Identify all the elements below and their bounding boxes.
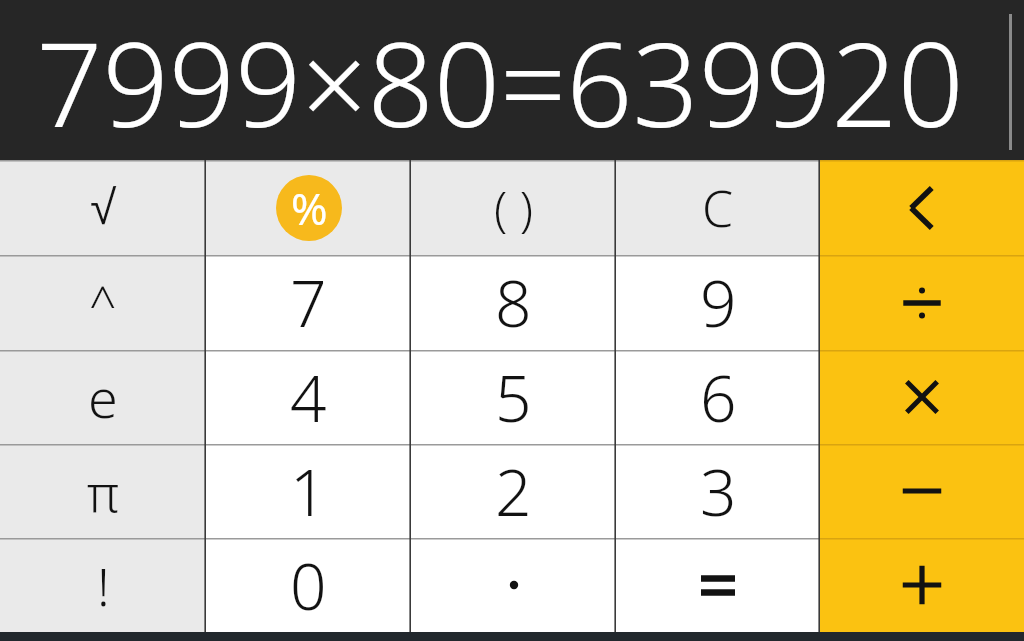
button[interactable]: Divide (820, 255, 1024, 350)
staticText: 1 (290, 448, 327, 535)
button[interactable]: 9 (616, 255, 820, 350)
button[interactable]: 0 (206, 538, 411, 632)
button[interactable]: π (0, 444, 206, 538)
staticText: C (702, 174, 734, 242)
staticText: π (87, 456, 120, 527)
button[interactable]: 8 (411, 255, 616, 350)
staticText: 5 (495, 354, 532, 441)
button[interactable]: ! (0, 538, 206, 632)
button[interactable]: Plus (820, 538, 1024, 632)
staticText: ( ) (494, 175, 534, 240)
staticText: % (291, 178, 328, 238)
staticText: 0 (290, 542, 327, 629)
button[interactable]: 2 (411, 444, 616, 538)
button[interactable]: 1 (206, 444, 411, 538)
button[interactable]: C (616, 160, 820, 255)
button[interactable]: Minus (820, 444, 1024, 538)
staticText: ^ (89, 270, 117, 335)
button[interactable]: % (206, 160, 411, 255)
staticText: √ (90, 181, 117, 235)
staticText: 7999×80=639920 (0, 3, 1012, 161)
button[interactable]: 3 (616, 444, 820, 538)
other: Plus (896, 559, 948, 611)
other: Equals (693, 560, 743, 610)
button[interactable]: Equals (616, 538, 820, 632)
button[interactable]: e (0, 350, 206, 444)
staticText: 8 (495, 259, 532, 346)
other: Minus (896, 465, 948, 517)
other: Divide (896, 277, 948, 329)
staticText: e (88, 360, 118, 434)
staticText: 2 (495, 448, 532, 535)
staticText: 9 (700, 259, 737, 346)
other: Multiply (899, 374, 945, 420)
button[interactable]: Backspace (820, 160, 1024, 255)
button[interactable]: ( ) (411, 160, 616, 255)
button[interactable]: ^ (0, 255, 206, 350)
button[interactable]: Multiply (820, 350, 1024, 444)
staticText: ! (97, 550, 110, 621)
button[interactable]: 6 (616, 350, 820, 444)
button[interactable]: Decimal point (411, 538, 616, 632)
button[interactable]: √ (0, 160, 206, 255)
staticText: 4 (290, 354, 327, 441)
staticText: 6 (700, 354, 737, 441)
staticText: 7 (290, 259, 327, 346)
staticText: 3 (700, 448, 737, 535)
other: Backspace (895, 181, 949, 235)
other: Decimal point (500, 571, 528, 599)
button[interactable]: 4 (206, 350, 411, 444)
button[interactable]: 7 (206, 255, 411, 350)
button[interactable]: 5 (411, 350, 616, 444)
